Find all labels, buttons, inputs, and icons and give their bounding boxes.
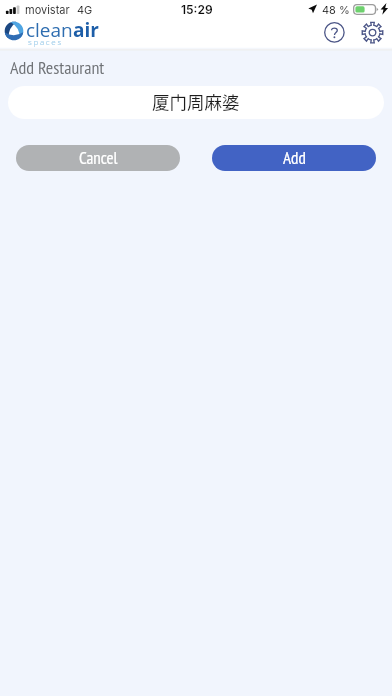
staticText: clean	[26, 17, 73, 43]
staticText: air	[73, 17, 99, 43]
staticText: 48 %	[322, 3, 350, 16]
staticText: Cancel	[79, 147, 118, 169]
button[interactable]: 厦门周麻婆	[8, 86, 384, 119]
button[interactable]: Add	[212, 145, 376, 171]
staticText: Add Restaurant	[10, 56, 105, 79]
staticText: 4G	[77, 3, 93, 16]
staticText: 厦门周麻婆	[152, 89, 240, 114]
button[interactable]: Help	[322, 20, 347, 45]
staticText: spaces	[28, 36, 63, 47]
button[interactable]: Cancel	[16, 145, 180, 171]
staticText: Add	[283, 147, 306, 169]
staticText: movistar	[25, 3, 70, 16]
button[interactable]: Settings	[360, 20, 385, 45]
staticText: 15:29	[181, 2, 213, 17]
